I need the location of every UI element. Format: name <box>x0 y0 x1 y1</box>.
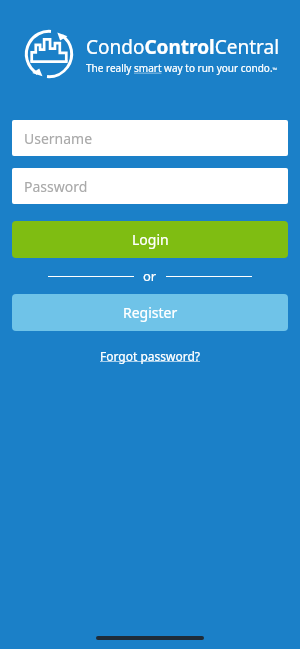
staticText: Username <box>24 129 93 148</box>
staticText: Password <box>24 177 88 196</box>
staticText: Register <box>123 303 178 322</box>
staticText: Login <box>132 230 169 249</box>
other: Condo Control Central logo <box>22 27 76 81</box>
staticText: Forgot password? <box>100 348 201 364</box>
button[interactable]: Register <box>12 294 288 331</box>
button[interactable]: Forgot password? <box>92 345 209 367</box>
staticText: or <box>143 267 157 285</box>
button[interactable]: Password <box>12 168 288 204</box>
button[interactable]: Username <box>12 120 288 156</box>
staticText: CondoControlCentral <box>86 34 280 60</box>
button[interactable]: Login <box>12 221 288 258</box>
staticText: The really smart way to run your condo.™ <box>86 61 278 75</box>
